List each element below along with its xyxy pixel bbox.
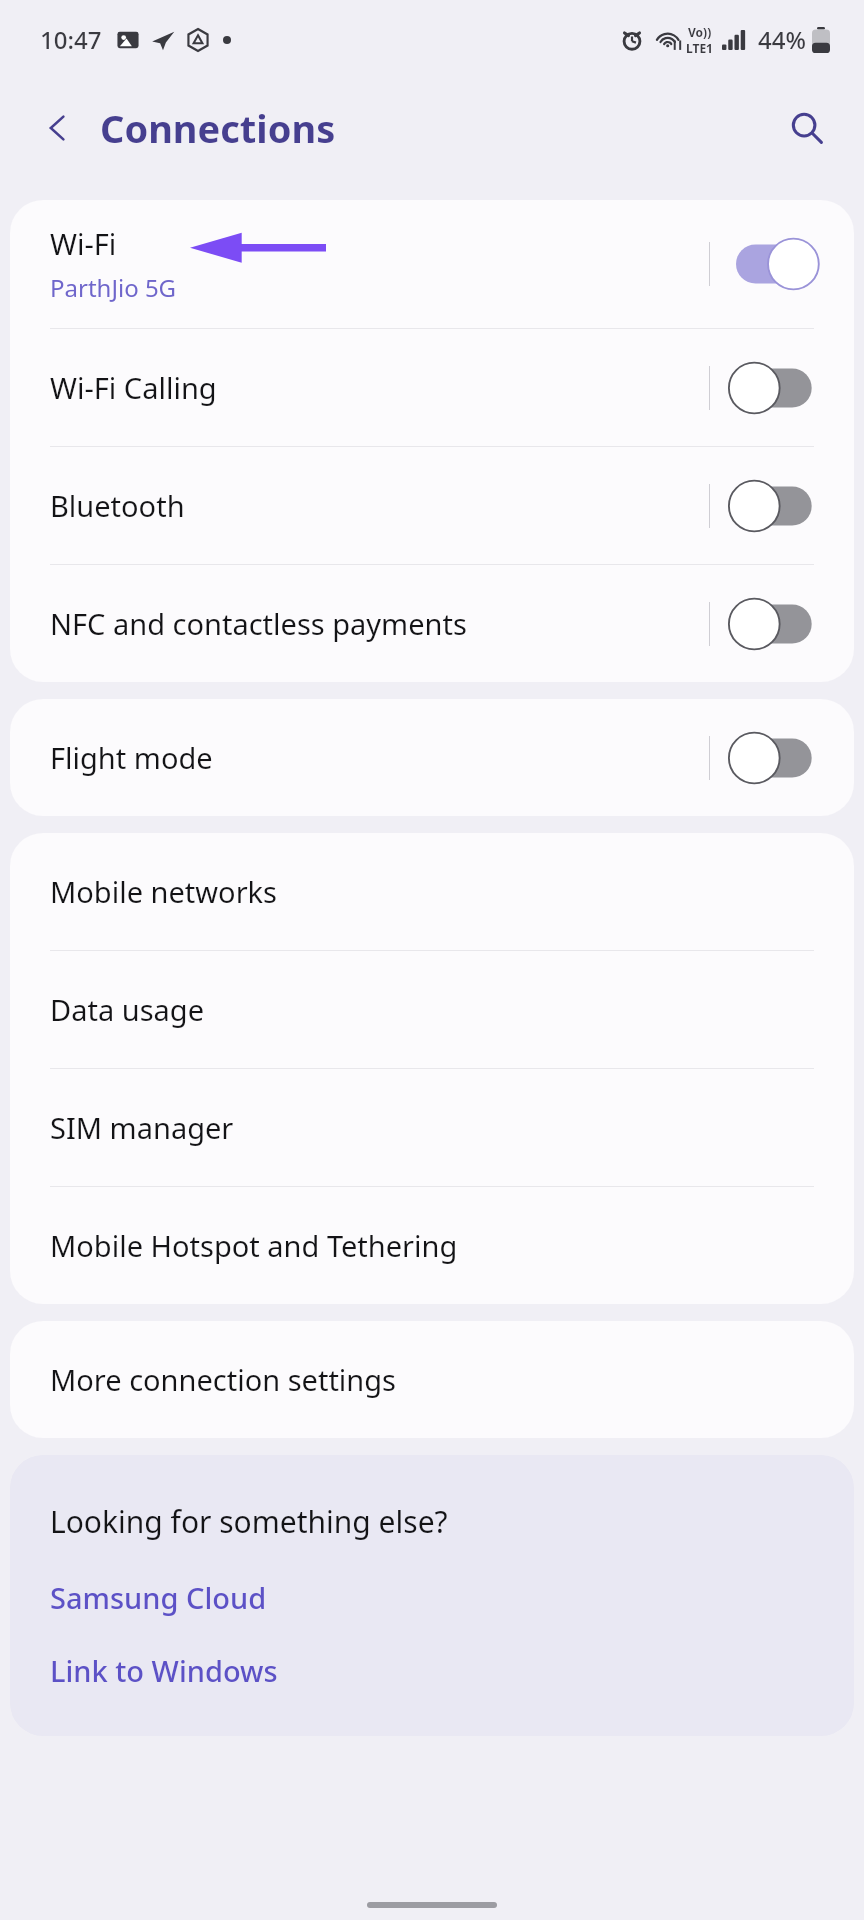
button[interactable]: Link to Windows	[50, 1651, 278, 1690]
button[interactable]: NFC and contactless payments	[10, 565, 854, 682]
staticText: NFC and contactless payments	[50, 604, 467, 643]
button[interactable]: SIM manager	[10, 1069, 854, 1186]
staticText: Looking for something else?	[50, 1501, 448, 1542]
button[interactable]: Back	[30, 100, 86, 156]
staticText: ParthJio 5G	[50, 271, 177, 304]
button[interactable]: Samsung Cloud	[50, 1578, 267, 1617]
button[interactable]: More connection settings	[10, 1321, 854, 1438]
staticText: More connection settings	[50, 1360, 396, 1399]
button[interactable]: Flight mode	[10, 699, 854, 816]
button[interactable]: Search	[776, 97, 838, 159]
button[interactable]: Wi-Fi	[10, 200, 854, 328]
staticText: Wi-Fi	[50, 224, 117, 263]
staticText: 10:47	[40, 23, 102, 56]
staticText: Bluetooth	[50, 486, 185, 525]
button[interactable]: Bluetooth	[10, 447, 854, 564]
button[interactable]: Wi-Fi Calling	[10, 329, 854, 446]
staticText: LTE1	[686, 40, 713, 56]
staticText: Wi-Fi Calling	[50, 368, 217, 407]
button[interactable]: Mobile Hotspot and Tethering	[10, 1187, 854, 1304]
button[interactable]: Mobile networks	[10, 833, 854, 950]
staticText: SIM manager	[50, 1108, 234, 1147]
staticText: Connections	[100, 102, 336, 154]
staticText: 44%	[758, 23, 806, 56]
staticText: Mobile networks	[50, 872, 277, 911]
staticText: Flight mode	[50, 738, 213, 777]
button[interactable]: Data usage	[10, 951, 854, 1068]
staticText: Mobile Hotspot and Tethering	[50, 1226, 458, 1265]
staticText: Vo))	[688, 24, 712, 40]
staticText: Data usage	[50, 990, 204, 1029]
